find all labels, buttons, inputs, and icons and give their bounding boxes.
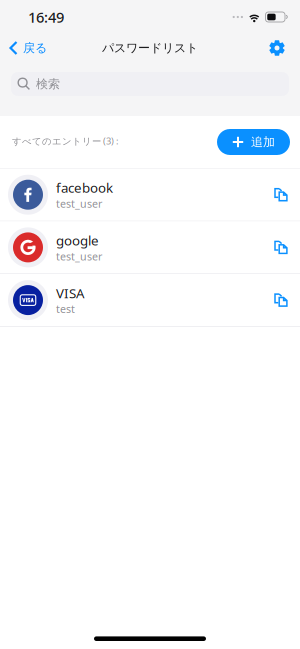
button[interactable]: google <box>0 221 300 273</box>
staticText: test_user <box>56 249 102 263</box>
staticText: 追加 <box>251 135 275 149</box>
staticText: 戻る <box>23 41 47 55</box>
staticText: 16:49 <box>28 7 64 27</box>
staticText: google <box>56 231 99 249</box>
button[interactable]: facebook <box>0 169 300 221</box>
button[interactable]: 戻る <box>0 34 55 62</box>
staticText: VISA <box>56 284 85 302</box>
button[interactable]: 設定 <box>269 34 300 62</box>
staticText: test <box>56 302 75 316</box>
staticText: 検索 <box>36 77 60 91</box>
staticText: パスワードリスト <box>102 41 198 55</box>
button[interactable]: VISA <box>0 274 300 326</box>
staticText: test_user <box>56 196 102 211</box>
staticText: facebook <box>56 179 113 196</box>
staticText: すべてのエントリー (3) : <box>12 135 119 147</box>
button[interactable]: 追加 <box>217 129 290 155</box>
